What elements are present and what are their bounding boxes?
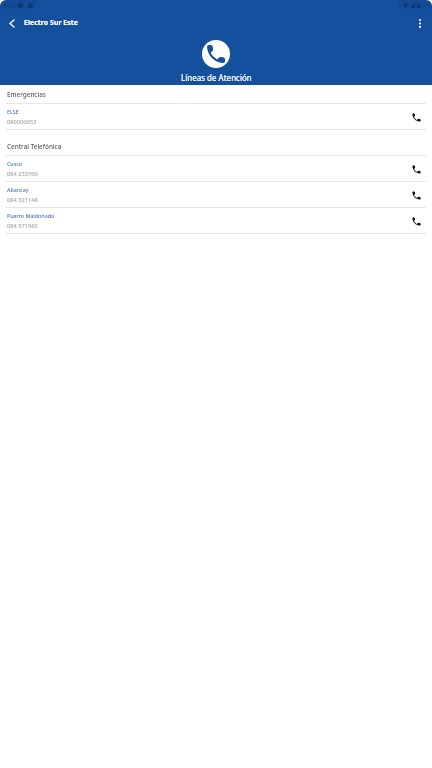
staticText: Cusco [7,160,23,167]
button[interactable]: Abancay [0,182,432,207]
button[interactable]: Call Puerto Maldonado [406,211,426,231]
staticText: Líneas de Atención [181,72,252,83]
button[interactable]: Call ELSE [406,107,426,127]
staticText: 084 571565 [7,222,38,230]
staticText: 084 233700 [7,170,38,178]
staticText: 084 321148 [7,196,38,204]
staticText: Central Telefónica [7,142,62,151]
button[interactable]: Call Cusco [406,159,426,179]
staticText: Abancay [7,186,29,193]
staticText: Puerto Maldonado [7,212,55,219]
staticText: Electro Sur Este [24,18,79,28]
staticText: 6:12 [4,2,15,9]
staticText: ELSE [7,108,19,115]
button[interactable]: More options [408,11,432,35]
button[interactable]: Puerto Maldonado [0,208,432,233]
button[interactable]: Back [0,11,24,35]
button[interactable]: ELSE [0,104,432,129]
button[interactable]: Cusco [0,156,432,181]
staticText: 080000053 [7,118,37,126]
button[interactable]: Call Abancay [406,185,426,205]
staticText: Emergencias [7,90,46,99]
